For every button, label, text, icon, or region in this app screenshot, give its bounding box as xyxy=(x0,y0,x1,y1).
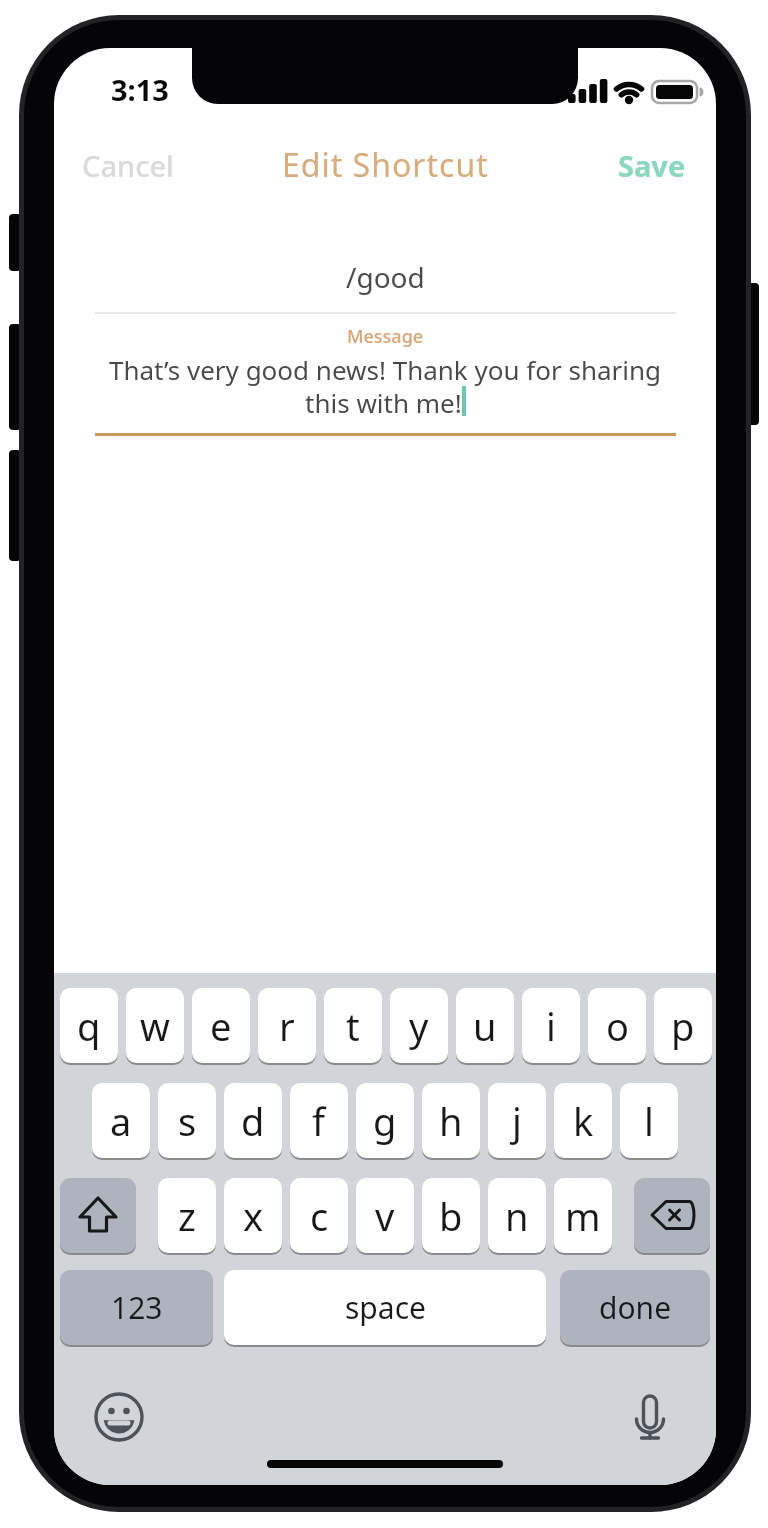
button[interactable]: h xyxy=(422,1083,480,1158)
staticText: Cancel xyxy=(82,146,174,185)
button[interactable]: v xyxy=(356,1178,414,1253)
button[interactable]: f xyxy=(290,1083,348,1158)
button[interactable]: q xyxy=(60,988,118,1063)
button[interactable]: x xyxy=(224,1178,282,1253)
staticText: c xyxy=(310,1190,329,1242)
button[interactable]: y xyxy=(390,988,448,1063)
button[interactable]: 123 xyxy=(60,1270,213,1345)
button[interactable]: /good xyxy=(54,254,716,300)
staticText: h xyxy=(439,1095,463,1147)
staticText: u xyxy=(473,1000,497,1052)
staticText: w xyxy=(140,1000,170,1052)
button[interactable]: l xyxy=(620,1083,678,1158)
button[interactable] xyxy=(90,1388,148,1446)
button[interactable]: w xyxy=(126,988,184,1063)
staticText: k xyxy=(573,1095,594,1147)
button[interactable]: space xyxy=(224,1270,546,1345)
staticText: i xyxy=(546,1000,556,1052)
staticText: /good xyxy=(346,258,425,296)
button[interactable]: o xyxy=(588,988,646,1063)
button[interactable]: done xyxy=(560,1270,710,1345)
staticText: b xyxy=(439,1190,463,1242)
staticText: m xyxy=(565,1190,601,1242)
button[interactable]: n xyxy=(488,1178,546,1253)
staticText: p xyxy=(671,1000,695,1052)
staticText: 123 xyxy=(111,1287,163,1328)
button[interactable]: c xyxy=(290,1178,348,1253)
staticText: l xyxy=(644,1095,654,1147)
button[interactable]: b xyxy=(422,1178,480,1253)
button[interactable]: m xyxy=(554,1178,612,1253)
staticText: x xyxy=(243,1190,264,1242)
staticText: a xyxy=(110,1095,132,1147)
staticText: f xyxy=(312,1095,326,1147)
button[interactable]: p xyxy=(654,988,712,1063)
staticText: t xyxy=(346,1000,360,1052)
staticText: That’s very good news! Thank you for sha… xyxy=(109,352,662,386)
button[interactable] xyxy=(634,1178,710,1253)
staticText: g xyxy=(373,1095,397,1147)
staticText: q xyxy=(77,1000,101,1052)
staticText: done xyxy=(599,1287,672,1328)
button[interactable]: g xyxy=(356,1083,414,1158)
staticText: j xyxy=(512,1095,522,1147)
button[interactable]: z xyxy=(158,1178,216,1253)
button[interactable]: k xyxy=(554,1083,612,1158)
staticText: Message xyxy=(347,324,424,348)
staticText: s xyxy=(178,1095,197,1147)
button[interactable]: Cancel xyxy=(78,142,178,188)
button[interactable]: i xyxy=(522,988,580,1063)
button[interactable]: r xyxy=(258,988,316,1063)
staticText: Save xyxy=(618,146,686,185)
staticText: this with me! xyxy=(305,385,462,417)
staticText: e xyxy=(210,1000,232,1052)
button[interactable]: t xyxy=(324,988,382,1063)
button[interactable]: s xyxy=(158,1083,216,1158)
staticText: y xyxy=(409,1000,429,1052)
button[interactable] xyxy=(621,1388,679,1446)
staticText: space xyxy=(345,1287,426,1328)
button[interactable] xyxy=(60,1178,136,1253)
button[interactable]: j xyxy=(488,1083,546,1158)
staticText: z xyxy=(178,1190,196,1242)
button[interactable]: Save xyxy=(604,142,700,188)
button[interactable]: u xyxy=(456,988,514,1063)
button[interactable]: e xyxy=(192,988,250,1063)
staticText: 3:13 xyxy=(111,70,169,108)
button[interactable]: d xyxy=(224,1083,282,1158)
staticText: Edit Shortcut xyxy=(282,143,489,187)
staticText: v xyxy=(375,1190,395,1242)
staticText: o xyxy=(606,1000,629,1052)
staticText: d xyxy=(241,1095,265,1147)
staticText: r xyxy=(279,1000,295,1052)
button[interactable]: a xyxy=(92,1083,150,1158)
staticText: n xyxy=(505,1190,529,1242)
